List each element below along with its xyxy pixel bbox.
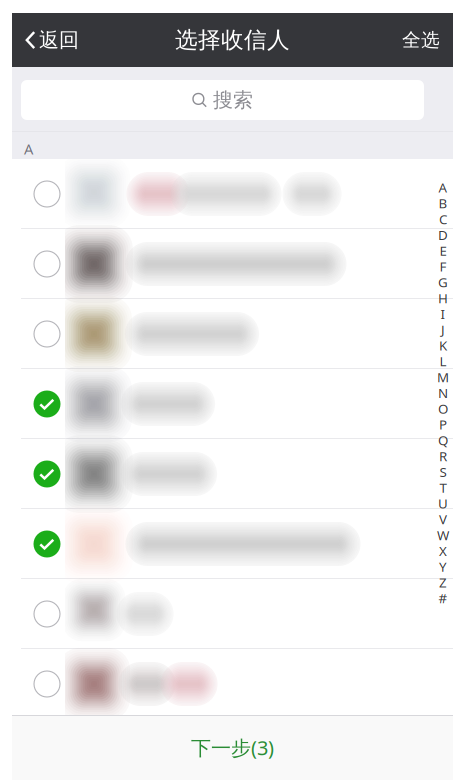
staticText: 返回 (39, 28, 79, 52)
staticText: M (437, 368, 449, 386)
staticText: # (438, 589, 447, 607)
button[interactable] (12, 159, 453, 229)
staticText: N (438, 384, 448, 402)
button[interactable]: 搜索 (21, 80, 424, 120)
button[interactable] (12, 579, 453, 649)
staticText: D (438, 226, 448, 244)
staticText: V (439, 510, 447, 528)
staticText: 选择收信人 (175, 26, 290, 54)
staticText: Z (439, 573, 447, 591)
staticText: I (440, 305, 445, 323)
staticText: B (438, 194, 447, 212)
staticText: P (439, 415, 447, 433)
button[interactable]: 返回 (12, 13, 89, 67)
staticText: E (439, 242, 446, 259)
staticText: O (438, 400, 448, 417)
staticText: U (438, 494, 448, 512)
staticText: 全选 (402, 28, 440, 51)
button[interactable] (12, 299, 453, 369)
button[interactable] (12, 509, 453, 579)
staticText: 搜索 (213, 88, 253, 112)
button[interactable]: 下一步(3) (12, 715, 453, 780)
staticText: Y (439, 558, 447, 575)
staticText: K (439, 336, 447, 354)
staticText: W (437, 526, 449, 544)
button[interactable] (12, 439, 453, 509)
staticText: X (439, 542, 447, 560)
staticText: A (24, 139, 33, 158)
button[interactable] (12, 649, 453, 719)
staticText: T (439, 479, 446, 496)
staticText: R (439, 447, 447, 465)
staticText: L (439, 352, 446, 370)
staticText: S (439, 463, 446, 481)
staticText: F (439, 257, 446, 275)
staticText: G (438, 273, 448, 291)
button[interactable]: 全选 (390, 13, 453, 67)
staticText: A (438, 178, 447, 196)
staticText: C (439, 210, 447, 228)
button[interactable] (12, 369, 453, 439)
staticText: Q (438, 431, 448, 449)
staticText: J (441, 321, 445, 338)
staticText: 下一步(3) (191, 734, 274, 761)
button[interactable] (12, 229, 453, 299)
staticText: H (438, 289, 448, 307)
